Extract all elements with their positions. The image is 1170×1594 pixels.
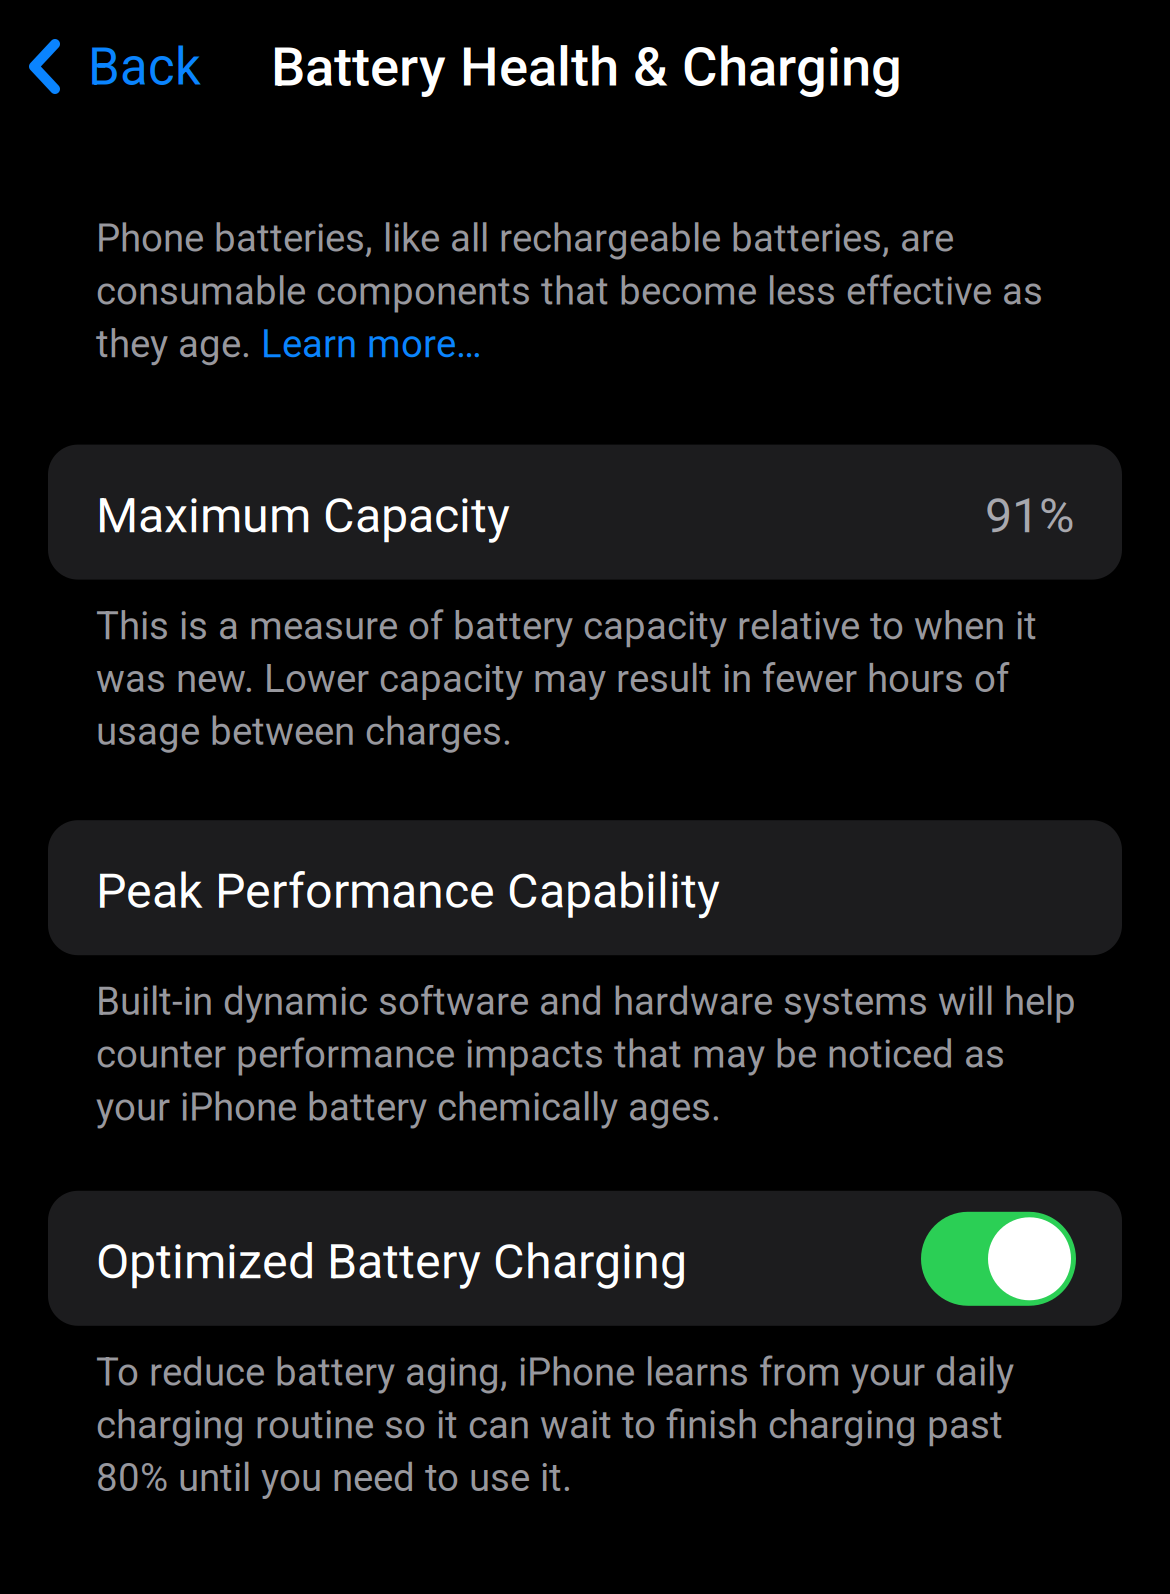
button[interactable]: Optimized Battery Charging, on (921, 1212, 1074, 1312)
staticText: Maximum Capacity (96, 487, 510, 544)
staticText: Peak Performance Capability (96, 863, 720, 919)
staticText: This is a measure of battery capacity re… (96, 604, 1037, 754)
staticText: 91% (985, 487, 1074, 544)
staticText: Optimized Battery Charging (96, 1233, 687, 1290)
staticText: Phone batteries, like all rechargeable b… (96, 216, 1043, 367)
staticText: To reduce battery aging, iPhone learns f… (96, 1350, 1014, 1500)
staticText: Battery Health & Charging (271, 35, 902, 99)
button[interactable]: Peak Performance Capability (0, 820, 1170, 955)
staticText: Back (88, 37, 201, 97)
staticText: Built-in dynamic software and hardware s… (96, 979, 1076, 1130)
button[interactable]: Maximum Capacity (0, 445, 1170, 580)
button[interactable]: Back (0, 23, 201, 111)
